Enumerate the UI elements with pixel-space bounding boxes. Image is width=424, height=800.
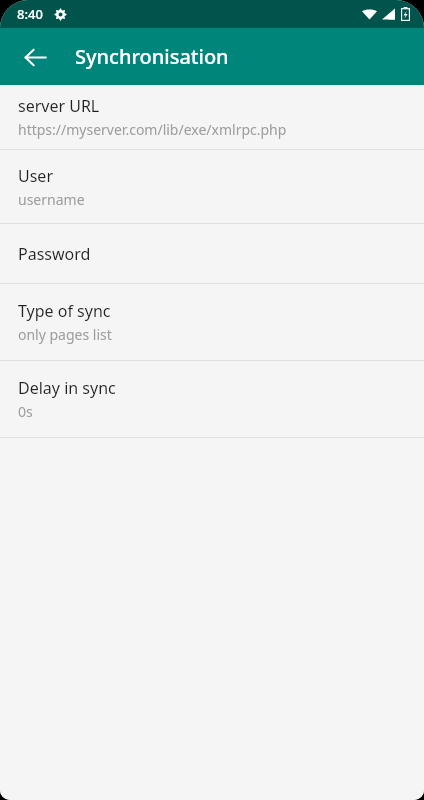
staticText: Password — [18, 243, 91, 265]
staticText: User — [18, 165, 53, 187]
staticText: 0s — [18, 402, 33, 421]
staticText: only pages list — [18, 325, 112, 344]
button[interactable]: Delay in sync — [0, 361, 424, 437]
button[interactable]: Password — [0, 224, 424, 283]
staticText: 8:40 — [17, 5, 43, 23]
staticText: https://myserver.com/lib/exe/xmlrpc.php — [18, 120, 287, 139]
staticText: Delay in sync — [18, 377, 116, 399]
button[interactable]: Back — [11, 33, 59, 81]
staticText: username — [18, 190, 85, 209]
button[interactable]: server URL — [0, 85, 424, 149]
staticText: server URL — [18, 95, 100, 117]
staticText: Type of sync — [18, 300, 111, 322]
staticText: Synchronisation — [75, 43, 229, 70]
button[interactable]: User — [0, 150, 424, 223]
button[interactable]: Type of sync — [0, 284, 424, 360]
